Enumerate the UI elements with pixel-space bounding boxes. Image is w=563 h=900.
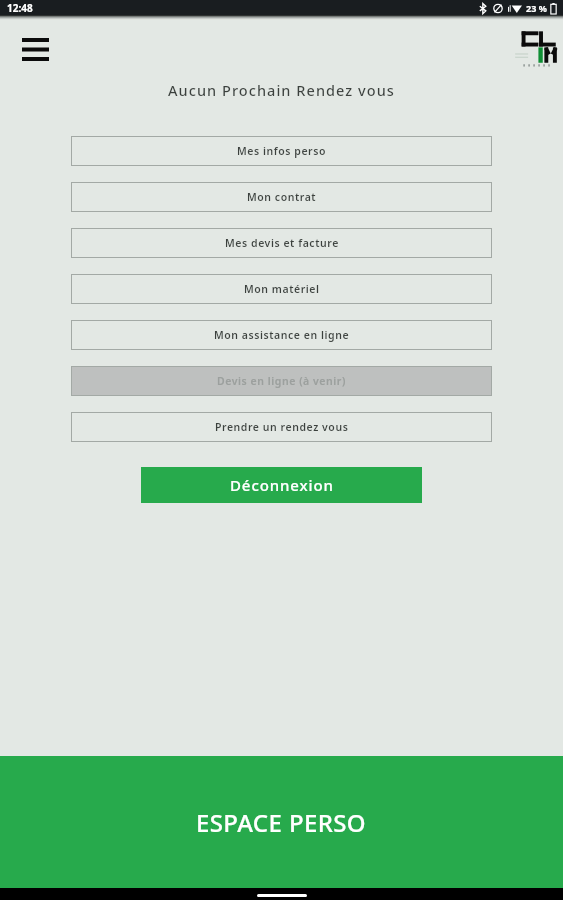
staticText: Mon assistance en ligne — [214, 328, 350, 342]
button[interactable]: Mon matériel — [71, 274, 492, 304]
staticText: Mes infos perso — [237, 144, 326, 158]
button[interactable]: Mon assistance en ligne — [71, 320, 492, 350]
staticText: 12:48 — [7, 1, 33, 15]
button[interactable]: Menu — [8, 27, 62, 71]
staticText: Aucun Prochain Rendez vous — [0, 80, 563, 100]
staticText: Mon contrat — [247, 190, 317, 204]
button[interactable]: ESPACE PERSO — [0, 756, 563, 888]
staticText: 23 % — [526, 2, 547, 14]
button[interactable]: Mes infos perso — [71, 136, 492, 166]
staticText: Devis en ligne (à venir) — [217, 374, 346, 388]
staticText: Mes devis et facture — [225, 236, 339, 250]
button[interactable]: Mon contrat — [71, 182, 492, 212]
button[interactable]: Prendre un rendez vous — [71, 412, 492, 442]
button[interactable]: Déconnexion — [141, 467, 422, 503]
staticText: ESPACE PERSO — [196, 806, 367, 839]
button[interactable]: Mes devis et facture — [71, 228, 492, 258]
staticText: Déconnexion — [230, 475, 334, 495]
staticText: Prendre un rendez vous — [215, 420, 349, 434]
staticText: Mon matériel — [244, 282, 320, 296]
button[interactable]: Devis en ligne (à venir) — [71, 366, 492, 396]
